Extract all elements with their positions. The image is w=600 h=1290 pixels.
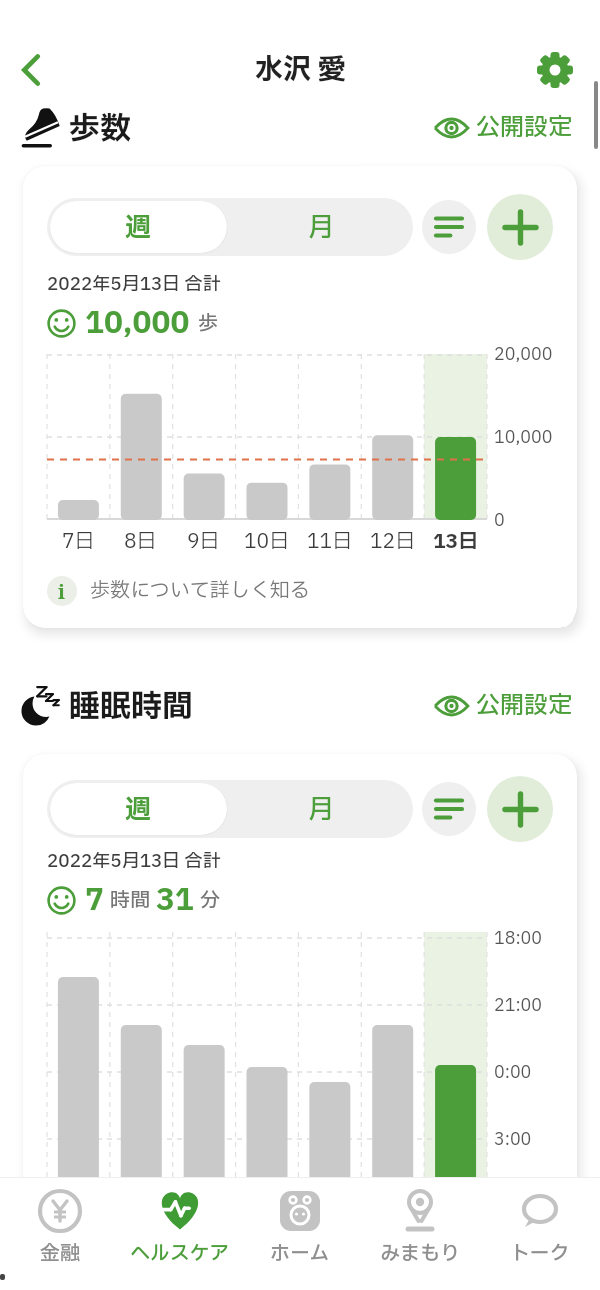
button[interactable]: 週 (50, 783, 227, 835)
staticText: 時間 (110, 886, 150, 916)
staticText: 0 (494, 508, 505, 533)
button[interactable] (422, 782, 476, 836)
staticText: 13日 (433, 527, 479, 557)
staticText: 分 (200, 886, 220, 916)
staticText: 7 (85, 878, 104, 923)
staticText: 20,000 (494, 342, 553, 367)
button[interactable]: みまもり (360, 1188, 480, 1290)
button[interactable]: ホーム (240, 1188, 360, 1290)
staticText: 10,000 (494, 425, 553, 450)
button[interactable]: 月 (230, 198, 413, 256)
staticText: 月 (308, 208, 335, 247)
staticText: 金融 (40, 1239, 80, 1269)
button[interactable] (487, 194, 553, 260)
staticText: 7日 (62, 527, 95, 557)
staticText: 週 (125, 208, 152, 247)
button[interactable]: 月 (230, 780, 413, 838)
staticText: 10日 (244, 527, 290, 557)
staticText: i (58, 578, 66, 605)
staticText: 歩数 (69, 106, 131, 150)
button[interactable] (422, 200, 476, 254)
button[interactable]: 金融 (0, 1188, 120, 1290)
staticText: みまもり (380, 1239, 460, 1269)
staticText: 月 (308, 790, 335, 829)
staticText: 公開設定 (476, 110, 572, 146)
staticText: 水沢 愛 (255, 49, 346, 91)
staticText: 31 (156, 878, 194, 923)
staticText: 18:00 (494, 926, 543, 951)
staticText: ホーム (270, 1239, 330, 1269)
staticText: 2022年5月13日 合計 (47, 271, 221, 298)
staticText: 2022年5月13日 合計 (47, 848, 221, 875)
button[interactable]: ヘルスケア (120, 1188, 240, 1290)
staticText: 12日 (370, 527, 416, 557)
staticText: 公開設定 (476, 688, 572, 724)
staticText: トーク (510, 1239, 570, 1269)
staticText: ヘルスケア (130, 1239, 230, 1269)
button[interactable]: i (47, 576, 310, 606)
button[interactable]: トーク (480, 1188, 600, 1290)
button[interactable] (536, 51, 574, 89)
staticText: 10,000 (85, 301, 190, 346)
staticText: 睡眠時間 (69, 684, 193, 728)
button[interactable] (14, 53, 48, 87)
button[interactable]: 週 (50, 201, 227, 253)
staticText: 21:00 (494, 993, 543, 1018)
button[interactable]: 公開設定 (434, 688, 572, 724)
staticText: 8日 (124, 527, 157, 557)
staticText: 週 (125, 790, 152, 829)
staticText: 0:00 (494, 1060, 532, 1085)
staticText: 歩数について詳しく知る (90, 576, 310, 606)
staticText: 9日 (187, 527, 220, 557)
staticText: 11日 (307, 527, 353, 557)
staticText: 3:00 (494, 1127, 532, 1152)
button[interactable]: 公開設定 (434, 110, 572, 146)
staticText: 歩 (198, 309, 218, 339)
button[interactable] (487, 776, 553, 842)
